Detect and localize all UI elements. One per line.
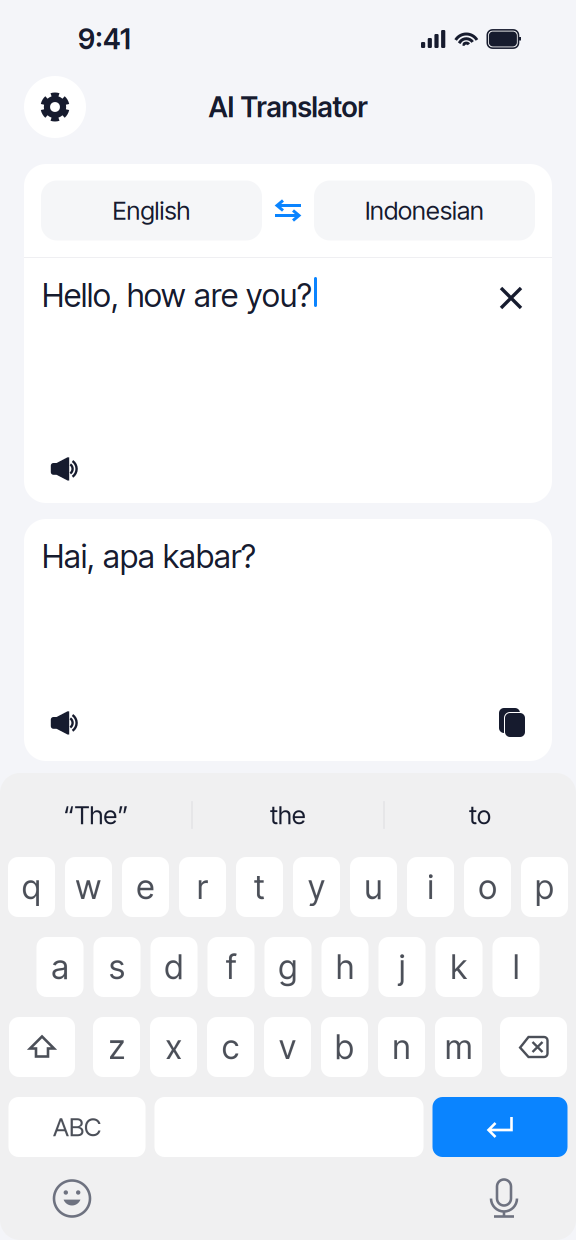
staticText: d — [164, 947, 183, 987]
staticText: Hello, how are you? — [42, 276, 312, 315]
button[interactable]: Delete — [500, 1017, 567, 1077]
button[interactable]: the — [192, 773, 383, 857]
button[interactable]: t — [236, 857, 283, 917]
staticText: AI Translator — [208, 90, 367, 124]
staticText: s — [109, 947, 125, 987]
button[interactable]: d — [150, 937, 197, 997]
staticText: ABC — [53, 1112, 101, 1142]
staticText: o — [478, 867, 496, 907]
button[interactable]: a — [36, 937, 83, 997]
staticText: z — [108, 1027, 124, 1067]
staticText: b — [335, 1027, 354, 1067]
staticText: the — [270, 800, 306, 830]
staticText: Hai, apa kabar? — [42, 537, 256, 576]
button[interactable]: o — [464, 857, 511, 917]
staticText: “The” — [63, 800, 128, 830]
button[interactable]: Speak translation — [43, 703, 85, 743]
button[interactable]: l — [492, 937, 539, 997]
button[interactable]: j — [378, 937, 425, 997]
button[interactable]: h — [321, 937, 368, 997]
button[interactable]: w — [65, 857, 112, 917]
staticText: to — [469, 800, 491, 830]
button[interactable]: y — [293, 857, 340, 917]
staticText: h — [336, 947, 354, 987]
staticText: e — [136, 867, 154, 907]
button[interactable]: m — [435, 1017, 482, 1077]
button[interactable]: v — [264, 1017, 311, 1077]
button[interactable]: Copy — [491, 703, 533, 743]
staticText: t — [254, 867, 265, 907]
button[interactable]: x — [150, 1017, 197, 1077]
staticText: v — [279, 1027, 296, 1067]
button[interactable]: to — [384, 773, 575, 857]
button[interactable]: Dictate — [476, 1170, 532, 1226]
staticText: Indonesian — [365, 195, 484, 226]
button[interactable]: b — [321, 1017, 368, 1077]
button[interactable]: u — [350, 857, 397, 917]
staticText: g — [278, 947, 297, 987]
button[interactable]: English — [41, 180, 262, 240]
button[interactable]: q — [8, 857, 55, 917]
button[interactable]: g — [264, 937, 311, 997]
staticText: w — [75, 867, 101, 907]
staticText: k — [450, 947, 467, 987]
button[interactable]: i — [407, 857, 454, 917]
button[interactable]: Return — [432, 1097, 567, 1157]
staticText: a — [51, 947, 68, 987]
staticText: y — [308, 867, 325, 907]
button[interactable]: p — [521, 857, 568, 917]
staticText: m — [445, 1027, 472, 1067]
staticText: n — [392, 1027, 410, 1067]
staticText: r — [197, 867, 208, 907]
staticText: u — [364, 867, 382, 907]
button[interactable]: Settings — [24, 76, 86, 138]
staticText: i — [427, 867, 433, 907]
button[interactable]: Speak — [43, 449, 85, 489]
button[interactable]: Emoji — [44, 1170, 100, 1226]
button[interactable]: ABC — [8, 1097, 145, 1157]
button[interactable]: f — [207, 937, 254, 997]
button[interactable]: n — [378, 1017, 425, 1077]
button[interactable]: k — [435, 937, 482, 997]
staticText: x — [165, 1027, 181, 1067]
staticText: l — [513, 947, 519, 987]
staticText: English — [112, 195, 190, 226]
button[interactable]: z — [93, 1017, 140, 1077]
button[interactable]: Clear — [489, 276, 533, 320]
staticText: p — [535, 867, 554, 907]
button[interactable]: “The” — [0, 773, 191, 857]
staticText: f — [226, 947, 236, 987]
button[interactable]: Indonesian — [314, 180, 535, 240]
button[interactable]: Swap languages — [275, 199, 301, 221]
button[interactable]: c — [207, 1017, 254, 1077]
button[interactable]: Shift — [9, 1017, 75, 1077]
button[interactable]: s — [93, 937, 140, 997]
button[interactable]: r — [179, 857, 226, 917]
staticText: c — [222, 1027, 239, 1067]
staticText: q — [22, 867, 41, 907]
staticText: 9:41 — [78, 22, 131, 56]
staticText: j — [399, 947, 405, 987]
button[interactable]: e — [122, 857, 169, 917]
